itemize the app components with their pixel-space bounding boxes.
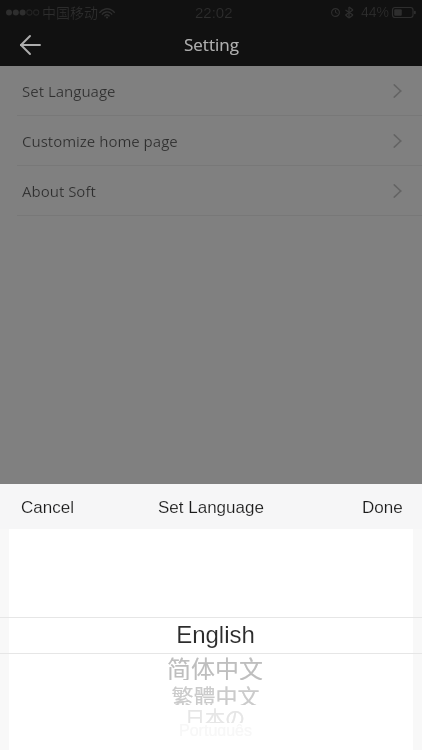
button[interactable]: 日本の bbox=[4, 703, 422, 723]
button[interactable]: 繁體中文 bbox=[4, 679, 422, 705]
staticText: Set Language bbox=[158, 498, 264, 517]
staticText: About Soft bbox=[22, 181, 96, 201]
button[interactable]: 简体中文 bbox=[4, 650, 422, 680]
button[interactable]: About Soft bbox=[0, 166, 422, 216]
staticText: 22:02 bbox=[195, 4, 233, 21]
staticText: Customize home page bbox=[22, 131, 178, 151]
button[interactable]: Done bbox=[362, 484, 403, 529]
staticText: 日本の bbox=[185, 703, 245, 723]
button[interactable]: Back bbox=[11, 26, 49, 64]
button[interactable]: Cancel bbox=[21, 484, 74, 529]
button[interactable]: Set Language bbox=[0, 66, 422, 116]
staticText: Done bbox=[362, 498, 403, 517]
staticText: Set Language bbox=[22, 81, 116, 101]
staticText: 44% bbox=[361, 4, 390, 20]
staticText: 中国移动 bbox=[42, 2, 98, 22]
button[interactable]: English bbox=[4, 617, 422, 651]
staticText: 繁體中文 bbox=[171, 679, 260, 705]
staticText: Português bbox=[179, 722, 252, 736]
staticText: 简体中文 bbox=[167, 650, 263, 680]
staticText: Cancel bbox=[21, 498, 74, 517]
staticText: Setting bbox=[184, 33, 239, 56]
staticText: English bbox=[176, 621, 255, 648]
button[interactable]: Customize home page bbox=[0, 116, 422, 166]
